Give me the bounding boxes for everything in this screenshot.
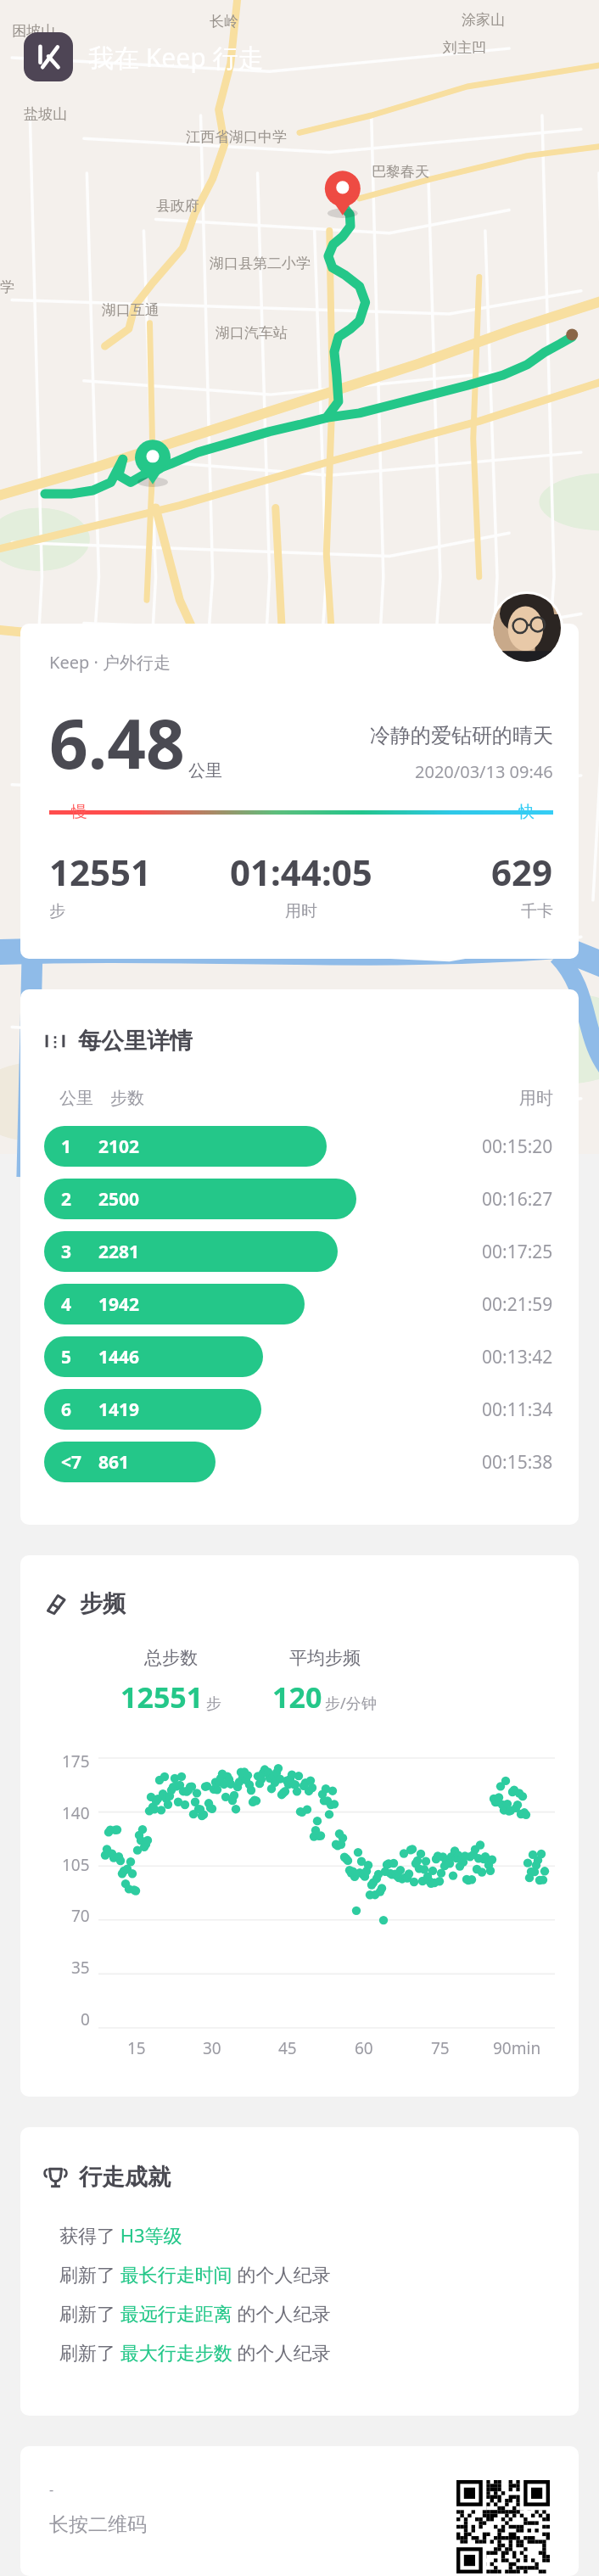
button[interactable]: User avatar [493,594,561,662]
staticText: 12551 [120,1677,204,1716]
staticText: 00:11:34 [482,1397,553,1422]
staticText: 冷静的爱钻研的晴天 [370,723,553,748]
staticText: 90min [493,2037,541,2059]
staticText: 公里 [188,760,222,781]
staticText: 平均步频 [289,1647,361,1669]
staticText: 涂家山 [462,11,505,29]
button[interactable]: 1 [44,1123,553,1170]
staticText: 1942 [98,1292,140,1317]
staticText: 总步数 [144,1647,198,1669]
staticText: 2020/03/13 09:46 [415,760,553,783]
staticText: 湖口县第二小学 [210,255,311,272]
staticText: 30 [203,2037,221,2059]
staticText: - [49,2480,54,2499]
staticText: 01:44:05 [230,848,372,896]
button[interactable]: 行走成就 [20,2127,579,2416]
staticText: 1 [61,1134,72,1159]
staticText: 步 [206,1694,221,1714]
button[interactable]: <7 [44,1438,553,1486]
staticText: 105 [62,1854,90,1876]
button[interactable]: Keep logo [24,32,73,81]
staticText: 1446 [98,1345,140,1369]
button[interactable]: 2 [44,1175,553,1223]
staticText: 0 [81,2008,90,2030]
button[interactable]: 6 [44,1386,553,1433]
button[interactable]: - [20,2446,579,2576]
staticText: 00:15:20 [482,1134,553,1159]
staticText: 步 [49,901,65,921]
staticText: 刷新了 最长行走时间 的个人纪录 [59,2261,331,2287]
staticText: 刷新了 最大行走步数 的个人纪录 [59,2339,331,2365]
staticText: 1419 [98,1397,140,1422]
staticText: 长按二维码 [49,2512,147,2537]
staticText: 3 [61,1240,72,1264]
staticText: 步数 [110,1088,144,1109]
staticText: 千卡 [521,901,553,921]
staticText: 2102 [98,1134,140,1159]
staticText: 00:21:59 [482,1292,553,1317]
staticText: 湖口汽车站 [216,324,288,342]
button[interactable]: QR code [456,2480,550,2542]
staticText: 00:17:25 [482,1240,553,1264]
staticText: 长岭 [210,13,238,31]
staticText: 刷新了 最远行走距离 的个人纪录 [59,2300,331,2326]
staticText: 175 [62,1750,90,1772]
button[interactable]: Keep · 户外行走 [20,624,579,959]
staticText: 140 [62,1802,90,1824]
button[interactable]: 5 [44,1333,553,1380]
button[interactable]: 步频 [20,1555,579,2097]
staticText: 巴黎春天 [372,163,429,181]
staticText: 湖口互通 [102,301,160,319]
staticText: 县政府 [156,197,199,215]
staticText: 5 [61,1345,72,1369]
staticText: 12551 [49,848,152,896]
staticText: 35 [71,1957,90,1979]
button[interactable]: 3 [44,1228,553,1275]
staticText: 每公里详情 [78,1027,193,1056]
staticText: 45 [278,2037,297,2059]
staticText: 获得了 H3等级 [59,2222,182,2248]
staticText: 15 [127,2037,146,2059]
staticText: 学 [0,278,14,296]
staticText: 00:16:27 [482,1187,553,1212]
staticText: 盐坡山 [24,105,67,123]
staticText: 2500 [98,1187,140,1212]
staticText: 步/分钟 [325,1693,377,1714]
staticText: 困坡山 [12,22,55,40]
staticText: 用时 [519,1088,553,1109]
staticText: 2281 [98,1240,140,1264]
staticText: 慢 [71,802,87,822]
staticText: 6 [61,1397,72,1422]
staticText: 2 [61,1187,72,1212]
staticText: Keep · 户外行走 [49,651,171,674]
staticText: 70 [71,1905,90,1927]
staticText: 江西省湖口中学 [186,128,287,146]
staticText: 6.48 [49,696,185,788]
staticText: 120 [272,1677,322,1716]
staticText: 步频 [80,1589,126,1618]
staticText: 我在 Keep 行走 [88,40,264,75]
button[interactable]: 4 [44,1280,553,1328]
staticText: 公里 [59,1088,93,1109]
staticText: 00:15:38 [482,1450,553,1475]
button[interactable]: 每公里详情 [20,989,579,1525]
staticText: 629 [491,848,553,896]
staticText: 00:13:42 [482,1345,553,1369]
staticText: 60 [355,2037,373,2059]
staticText: <7 [61,1450,82,1475]
staticText: 行走成就 [79,2163,171,2192]
staticText: 刘主凹 [443,39,486,57]
staticText: 75 [431,2037,450,2059]
staticText: 用时 [285,901,317,921]
staticText: 快 [518,802,535,822]
staticText: 861 [98,1450,130,1475]
staticText: 4 [61,1292,72,1317]
